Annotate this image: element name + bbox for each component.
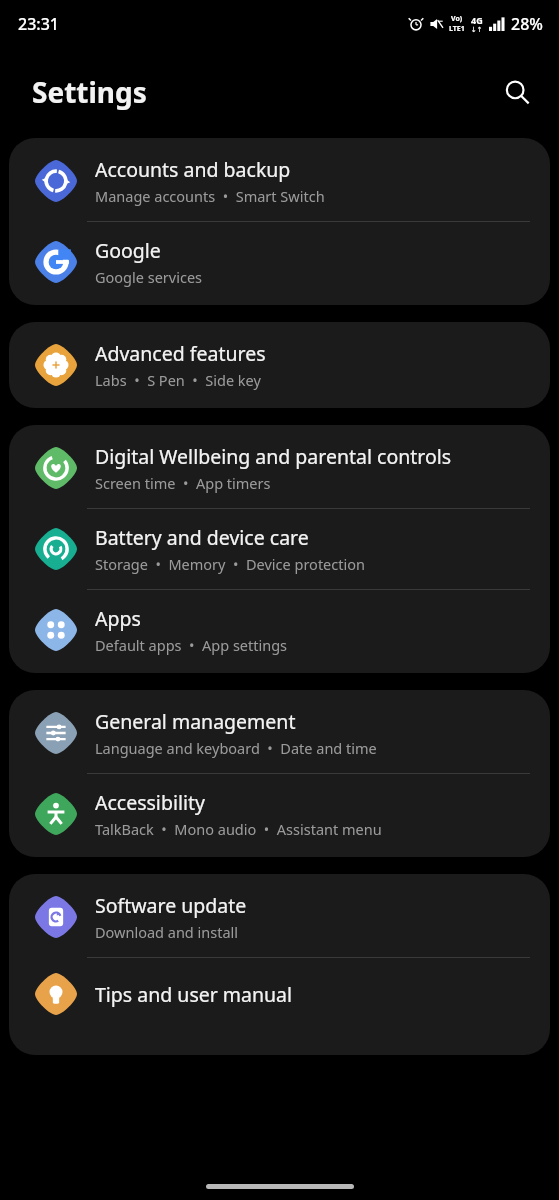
staticText: Storage • Memory • Device protection [95, 554, 365, 574]
staticText: Vo) [451, 14, 463, 24]
button[interactable]: Battery and device care [9, 509, 550, 589]
staticText: Settings [32, 73, 147, 111]
staticText: General management [95, 708, 296, 735]
button[interactable]: Digital Wellbeing and parental controls [9, 425, 550, 508]
staticText: Advanced features [95, 340, 266, 367]
button[interactable]: Accounts and backup [9, 138, 550, 221]
staticText: Default apps • App settings [95, 635, 288, 655]
staticText: 23:31 [18, 13, 59, 35]
button[interactable]: Tips and user manual [9, 958, 550, 1055]
button[interactable]: Apps [9, 590, 550, 673]
staticText: Google services [95, 267, 203, 287]
staticText: Digital Wellbeing and parental controls [95, 443, 452, 470]
staticText: Screen time • App timers [95, 473, 271, 493]
staticText: 4G [471, 14, 483, 26]
staticText: Google [95, 237, 161, 264]
staticText: TalkBack • Mono audio • Assistant menu [95, 819, 382, 839]
button[interactable]: Advanced features [9, 322, 550, 408]
staticText: Apps [95, 605, 141, 632]
button[interactable]: Accessibility [9, 774, 550, 857]
staticText: Manage accounts • Smart Switch [95, 186, 325, 206]
staticText: Labs • S Pen • Side key [95, 370, 261, 390]
button[interactable]: General management [9, 690, 550, 773]
staticText: ↓↑ [471, 26, 483, 34]
staticText: 28% [511, 13, 543, 35]
staticText: Accounts and backup [95, 156, 291, 183]
staticText: Software update [95, 892, 247, 919]
staticText: Battery and device care [95, 524, 309, 551]
staticText: LTE1 [449, 24, 465, 34]
button[interactable]: Search [495, 70, 539, 114]
staticText: Tips and user manual [95, 981, 293, 1008]
staticText: Accessibility [95, 789, 205, 816]
staticText: Download and install [95, 922, 239, 942]
button[interactable]: Google [9, 222, 550, 305]
staticText: Language and keyboard • Date and time [95, 738, 377, 758]
button[interactable]: Software update [9, 874, 550, 957]
